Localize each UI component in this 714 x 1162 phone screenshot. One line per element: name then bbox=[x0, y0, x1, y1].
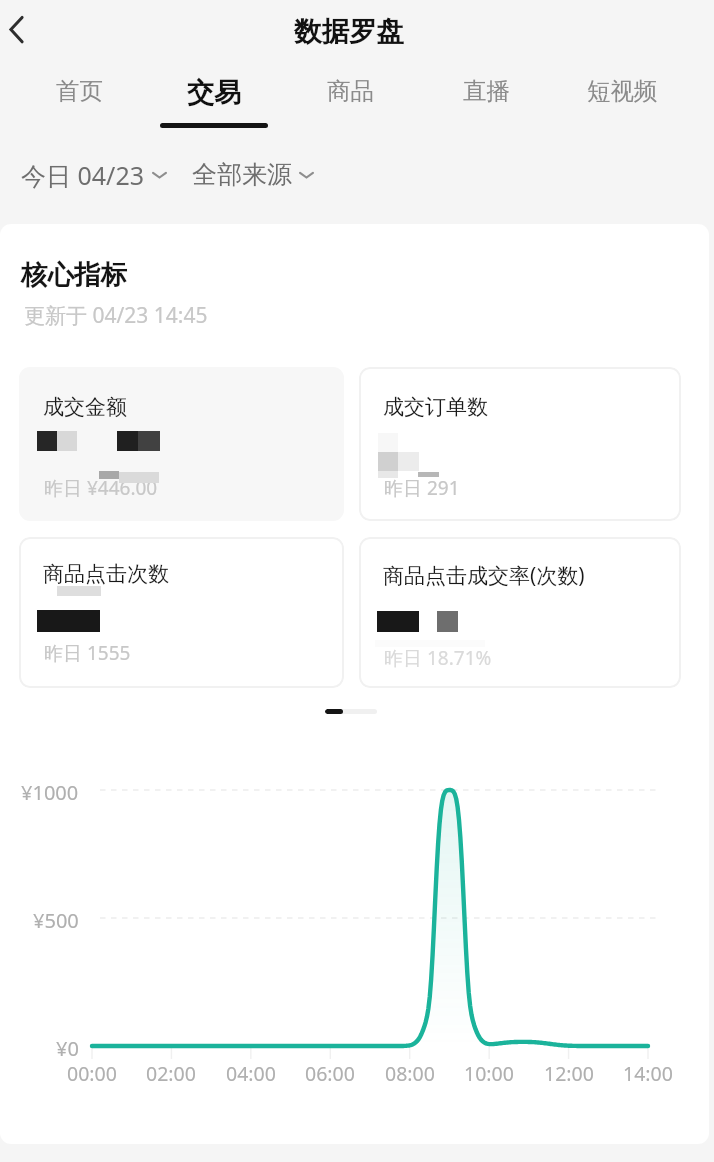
button[interactable]: 成交订单数 bbox=[359, 367, 681, 521]
button[interactable]: 商品 bbox=[286, 68, 414, 130]
button[interactable]: 今日 04/23 bbox=[21, 158, 168, 190]
staticText: 全部来源 bbox=[192, 159, 292, 190]
staticText: 直播 bbox=[463, 76, 510, 106]
button[interactable]: 交易 bbox=[150, 68, 278, 130]
staticText: 今日 04/23 bbox=[21, 158, 145, 190]
staticText: 06:00 bbox=[305, 1060, 355, 1087]
staticText: 商品点击成交率(次数) bbox=[383, 561, 585, 590]
staticText: 04:00 bbox=[226, 1060, 276, 1087]
button[interactable]: 首页 bbox=[15, 68, 143, 130]
staticText: 商品 bbox=[327, 76, 374, 106]
button[interactable]: 商品点击次数 bbox=[19, 537, 344, 688]
staticText: 00:00 bbox=[67, 1060, 117, 1087]
staticText: 昨日 ¥446.00 bbox=[44, 475, 158, 501]
staticText: ¥500 bbox=[33, 907, 79, 934]
staticText: ¥1000 bbox=[21, 779, 79, 806]
button[interactable]: 商品点击成交率(次数) bbox=[359, 537, 681, 688]
button[interactable]: 直播 bbox=[422, 68, 550, 130]
staticText: 14:00 bbox=[623, 1060, 673, 1087]
staticText: ¥0 bbox=[56, 1035, 79, 1062]
staticText: 08:00 bbox=[385, 1060, 435, 1087]
staticText: 成交订单数 bbox=[383, 394, 488, 420]
staticText: 数据罗盘 bbox=[294, 15, 404, 50]
staticText: 交易 bbox=[187, 76, 241, 110]
staticText: 昨日 291 bbox=[384, 475, 460, 501]
staticText: 12:00 bbox=[544, 1060, 594, 1087]
staticText: 更新于 04/23 14:45 bbox=[24, 301, 208, 330]
button[interactable]: 全部来源 bbox=[192, 158, 315, 190]
staticText: 昨日 18.71% bbox=[384, 645, 492, 671]
staticText: 核心指标 bbox=[21, 258, 127, 291]
button[interactable]: 短视频 bbox=[558, 68, 686, 130]
staticText: 02:00 bbox=[146, 1060, 196, 1087]
staticText: 成交金额 bbox=[43, 394, 127, 420]
staticText: 商品点击次数 bbox=[43, 561, 169, 587]
staticText: 10:00 bbox=[464, 1060, 514, 1087]
button[interactable]: Back bbox=[0, 0, 56, 58]
button[interactable]: 成交金额 bbox=[19, 367, 344, 521]
staticText: 短视频 bbox=[587, 76, 658, 106]
staticText: 首页 bbox=[56, 76, 103, 106]
staticText: 昨日 1555 bbox=[44, 640, 131, 666]
